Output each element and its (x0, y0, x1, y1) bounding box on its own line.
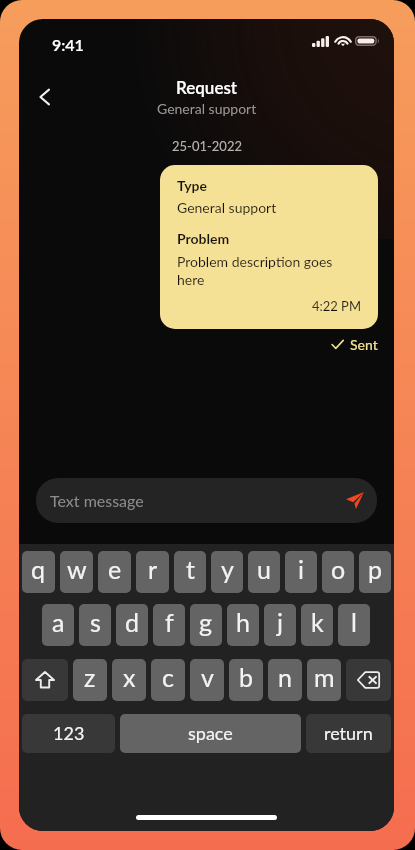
button[interactable]: f (153, 604, 185, 646)
button[interactable]: k (301, 604, 333, 646)
button[interactable]: h (227, 604, 259, 646)
staticText: m (314, 662, 335, 692)
staticText: General support (177, 199, 277, 216)
staticText: l (351, 607, 357, 637)
staticText: Type (177, 177, 208, 194)
button[interactable]: n (268, 659, 302, 701)
button[interactable]: v (190, 659, 224, 701)
button[interactable]: o (322, 551, 354, 593)
button[interactable]: c (151, 659, 185, 701)
staticText: o (331, 554, 346, 584)
button[interactable]: s (79, 604, 111, 646)
staticText: y (221, 554, 234, 584)
staticText: 9:41 (52, 35, 84, 54)
staticText: 25-01-2022 (172, 138, 242, 154)
staticText: g (199, 607, 213, 637)
staticText: return (324, 722, 373, 744)
button[interactable]: b (229, 659, 263, 701)
button[interactable]: p (359, 551, 391, 593)
staticText: f (165, 607, 174, 637)
staticText: t (186, 554, 195, 584)
button[interactable]: 123 (22, 714, 115, 753)
staticText: e (108, 554, 122, 584)
staticText: Problem description goes here (177, 253, 361, 288)
button[interactable]: x (112, 659, 146, 701)
button[interactable]: Back (23, 75, 67, 119)
staticText: Problem (177, 230, 230, 247)
button[interactable]: z (73, 659, 107, 701)
staticText: Text message (50, 491, 144, 510)
staticText: s (90, 607, 101, 637)
staticText: q (31, 554, 46, 584)
staticText: h (236, 607, 250, 637)
staticText: x (123, 662, 136, 692)
button[interactable]: u (248, 551, 280, 593)
staticText: 4:22 PM (177, 298, 361, 314)
button[interactable]: e (98, 551, 131, 593)
button[interactable]: g (190, 604, 222, 646)
staticText: i (298, 554, 305, 584)
button[interactable]: return (306, 714, 391, 753)
button[interactable]: j (264, 604, 296, 646)
staticText: Request (176, 77, 238, 97)
staticText: p (368, 554, 383, 584)
button[interactable]: space (120, 714, 301, 753)
button[interactable]: r (136, 551, 169, 593)
staticText: k (311, 607, 324, 637)
staticText: v (201, 662, 214, 692)
staticText: b (239, 662, 254, 692)
button[interactable]: t (174, 551, 206, 593)
button[interactable]: a (42, 604, 74, 646)
button[interactable]: Backspace (346, 659, 391, 701)
button[interactable]: l (338, 604, 370, 646)
staticText: j (277, 607, 284, 637)
staticText: r (148, 554, 158, 584)
button[interactable]: y (211, 551, 243, 593)
button[interactable]: q (22, 551, 55, 593)
button[interactable]: Shift (22, 659, 68, 701)
staticText: c (162, 662, 174, 692)
button[interactable]: i (285, 551, 317, 593)
staticText: n (278, 662, 292, 692)
button[interactable]: Text message (36, 478, 377, 523)
staticText: General support (157, 100, 257, 117)
staticText: 123 (53, 722, 85, 744)
staticText: Sent (350, 336, 378, 353)
staticText: z (84, 662, 96, 692)
button[interactable]: w (60, 551, 93, 593)
button[interactable]: Send (341, 488, 367, 514)
staticText: a (52, 607, 65, 637)
staticText: w (67, 554, 87, 584)
button[interactable]: Type (160, 165, 378, 329)
staticText: d (125, 607, 140, 637)
staticText: space (188, 722, 233, 744)
staticText: u (257, 554, 271, 584)
button[interactable]: d (116, 604, 148, 646)
button[interactable]: m (307, 659, 341, 701)
